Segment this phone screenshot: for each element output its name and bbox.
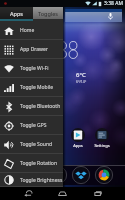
button[interactable]: Dropbox xyxy=(72,166,90,184)
button[interactable]: App xyxy=(49,166,67,184)
button[interactable]: Toggle GPS xyxy=(0,116,63,135)
staticText: Apps xyxy=(10,10,23,17)
staticText: Toggle Rotation xyxy=(20,160,57,167)
button[interactable]: Toggle Rotation xyxy=(0,154,63,173)
button[interactable]: App Drawer xyxy=(0,40,63,59)
button[interactable]: Search xyxy=(65,9,122,22)
staticText: 3:38 AM xyxy=(104,0,123,7)
button[interactable]: Back xyxy=(17,187,39,200)
staticText: App Drawer xyxy=(20,46,48,53)
button[interactable]: Toggle Wi-Fi xyxy=(0,59,63,78)
button[interactable]: Toggle Bluetooth xyxy=(0,97,63,116)
staticText: Toggle Bluetooth xyxy=(20,103,61,110)
staticText: Home xyxy=(20,27,35,34)
button[interactable]: Apps xyxy=(67,128,89,148)
staticText: Apps xyxy=(67,143,89,148)
button[interactable]: Recents xyxy=(86,187,108,200)
staticText: Toggles xyxy=(38,10,58,17)
staticText: Toggle GPS xyxy=(20,122,47,129)
button[interactable]: Home xyxy=(51,187,73,200)
staticText: Toggle Brightness xyxy=(20,177,63,184)
button[interactable]: Toggle Sound xyxy=(0,135,63,154)
staticText: Settings xyxy=(91,143,113,148)
button[interactable]: Home xyxy=(0,21,63,40)
button[interactable]: Toggle Brightness xyxy=(0,173,63,187)
button[interactable]: Chrome xyxy=(95,166,113,184)
staticText: 6°C xyxy=(76,71,86,79)
staticText: 6°/14° xyxy=(76,79,87,84)
staticText: Toggle Sound xyxy=(20,141,53,148)
staticText: Toggle Mobile Data xyxy=(20,84,63,91)
button[interactable]: Toggle Mobile Data xyxy=(0,78,63,97)
button[interactable]: Toggles xyxy=(33,7,63,19)
button[interactable]: Settings xyxy=(91,128,113,148)
staticText: Toggle Wi-Fi xyxy=(20,65,49,72)
button[interactable]: Apps xyxy=(0,7,33,19)
